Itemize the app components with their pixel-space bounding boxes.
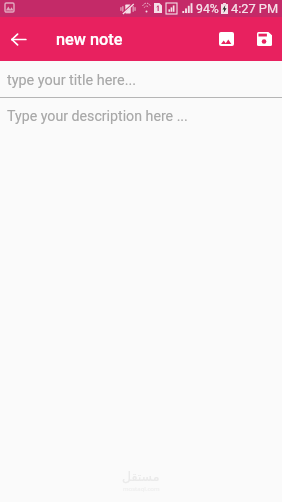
button[interactable]: Type your description here ... [0,98,282,502]
staticText: mostaql.com [123,485,160,493]
staticText: Type your description here ... [7,108,188,125]
staticText: 4:27 PM [231,1,279,16]
staticText: 94% [196,2,219,16]
button[interactable]: type your title here... [0,61,282,97]
button[interactable]: Save [244,17,282,61]
staticText: مستقل [122,469,160,484]
staticText: type your title here... [7,72,137,89]
button[interactable]: Add image [206,17,244,61]
button[interactable]: Back [0,17,36,61]
staticText: new note [56,30,123,49]
